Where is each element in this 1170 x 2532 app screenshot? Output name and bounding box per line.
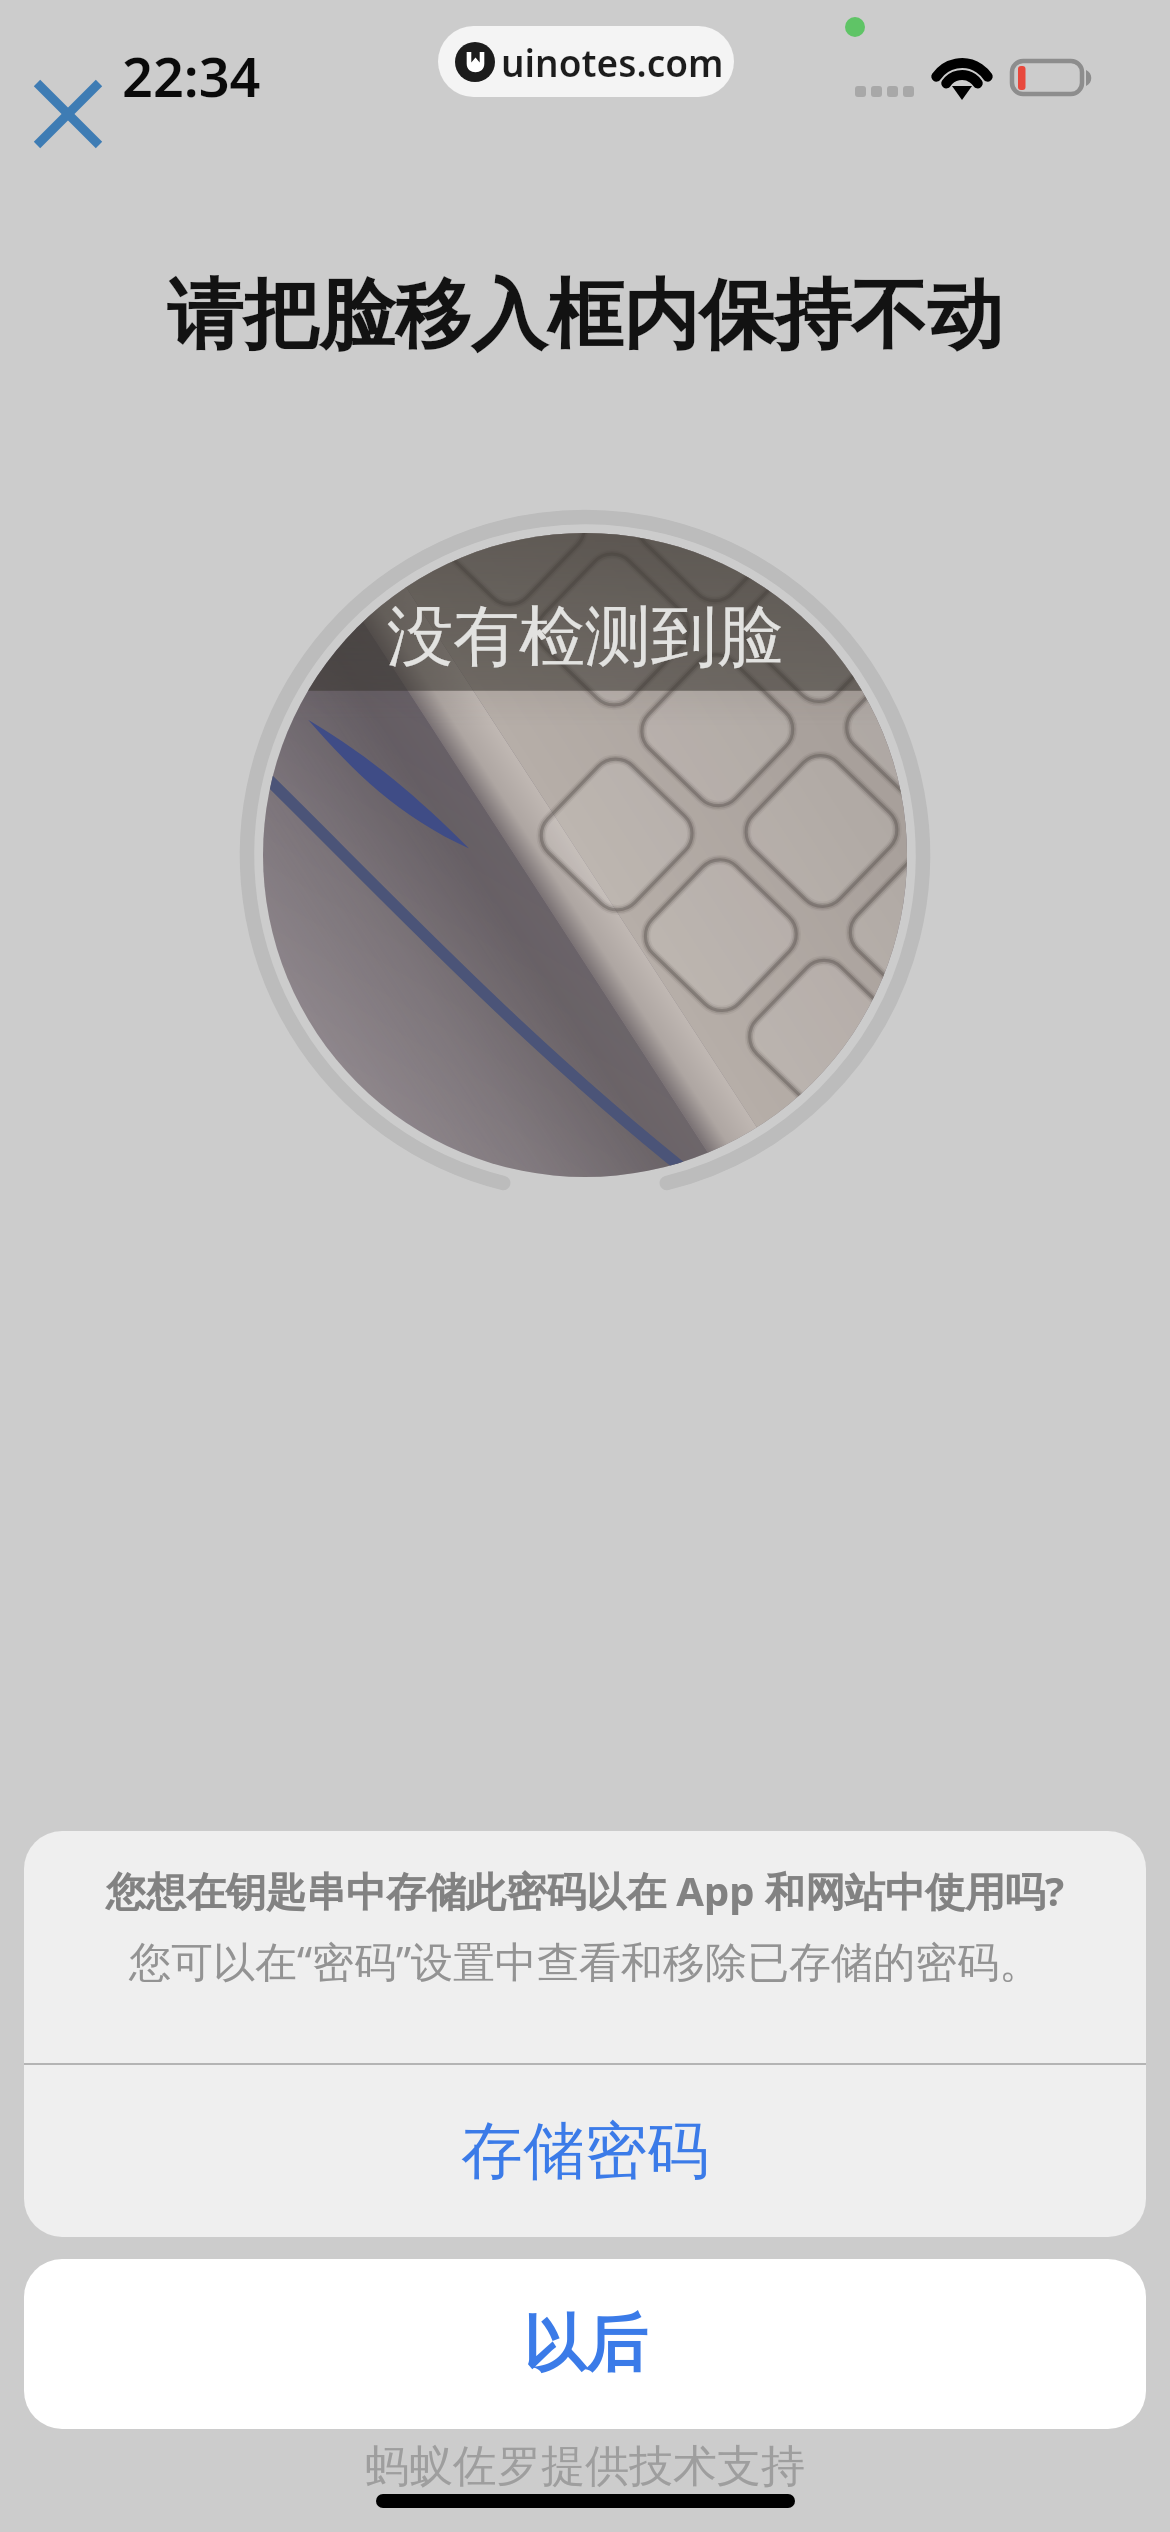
staticText: 您想在钥匙串中存储此密码以在 App 和网站中使用吗? xyxy=(24,1863,1146,1918)
staticText: 存储密码 xyxy=(461,2112,709,2190)
staticText: 没有检测到脸 xyxy=(387,595,783,678)
staticText: uinotes.com xyxy=(501,37,724,87)
staticText: 请把脸移入框内保持不动 xyxy=(0,268,1170,364)
staticText: 22:34 xyxy=(122,39,261,113)
button[interactable]: 存储密码 xyxy=(24,2065,1146,2237)
button[interactable]: Close xyxy=(26,72,110,156)
staticText: 以后 xyxy=(523,2305,647,2383)
staticText: 蚂蚁佐罗提供技术支持 xyxy=(365,2439,805,2494)
button[interactable]: 以后 xyxy=(24,2259,1146,2429)
staticText: 您可以在“密码”设置中查看和移除已存储的密码。 xyxy=(24,1932,1146,1989)
